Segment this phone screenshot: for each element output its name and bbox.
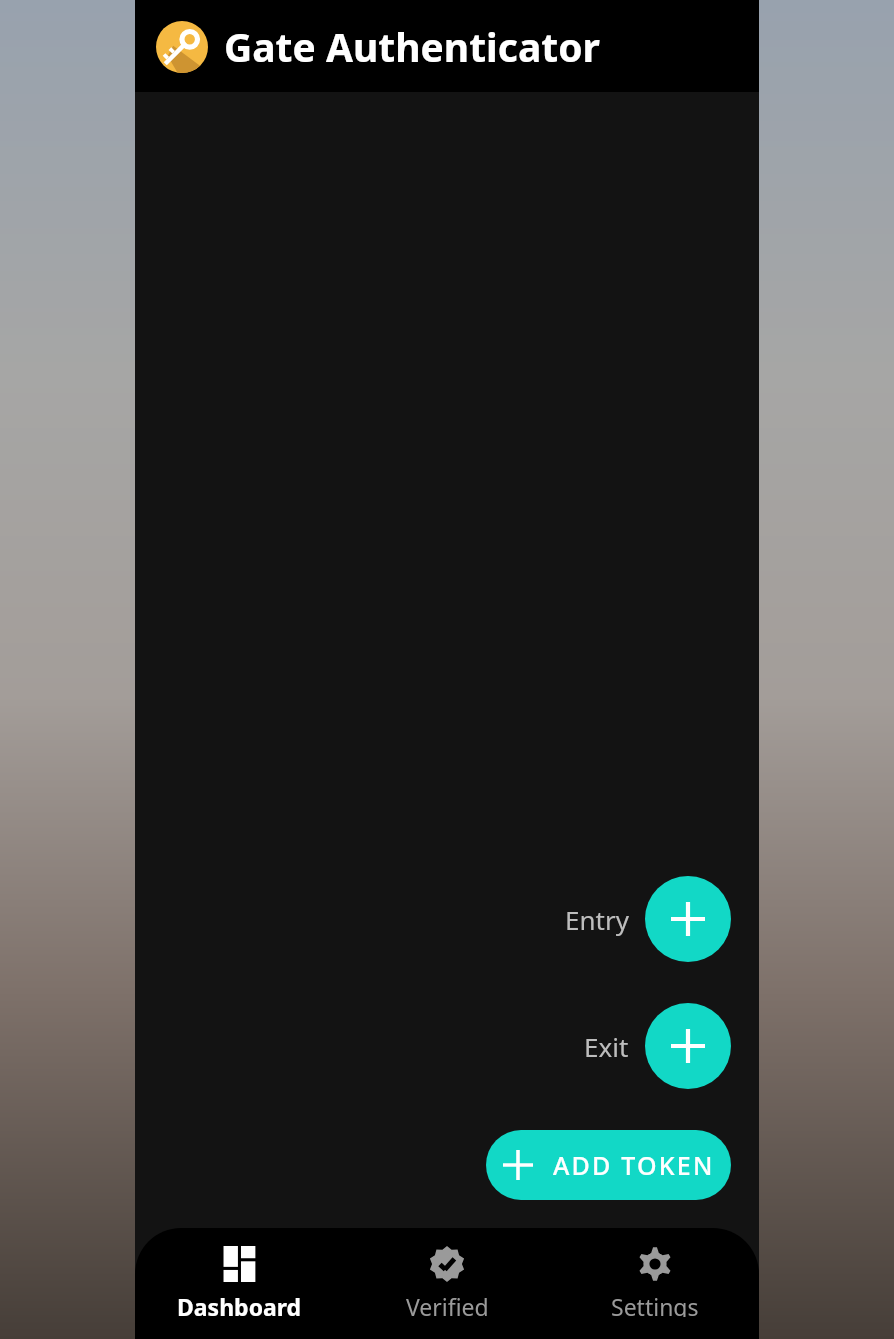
- button[interactable]: Dashboard: [135, 1228, 343, 1339]
- staticText: Verified: [406, 1291, 489, 1317]
- button[interactable]: Add Exit token: [645, 1003, 731, 1089]
- staticText: Entry: [565, 902, 629, 937]
- button[interactable]: ADD TOKEN: [486, 1130, 731, 1200]
- button[interactable]: Verified: [343, 1228, 551, 1339]
- staticText: ADD TOKEN: [553, 1148, 715, 1182]
- staticText: Dashboard: [177, 1291, 302, 1317]
- staticText: Gate Authenticator: [224, 20, 600, 73]
- button[interactable]: Add Entry token: [645, 876, 731, 962]
- staticText: Settings: [611, 1291, 699, 1317]
- staticText: Exit: [584, 1029, 629, 1064]
- button[interactable]: Settings: [551, 1228, 759, 1339]
- button[interactable]: Exit: [584, 1003, 731, 1089]
- button[interactable]: Entry: [565, 876, 731, 962]
